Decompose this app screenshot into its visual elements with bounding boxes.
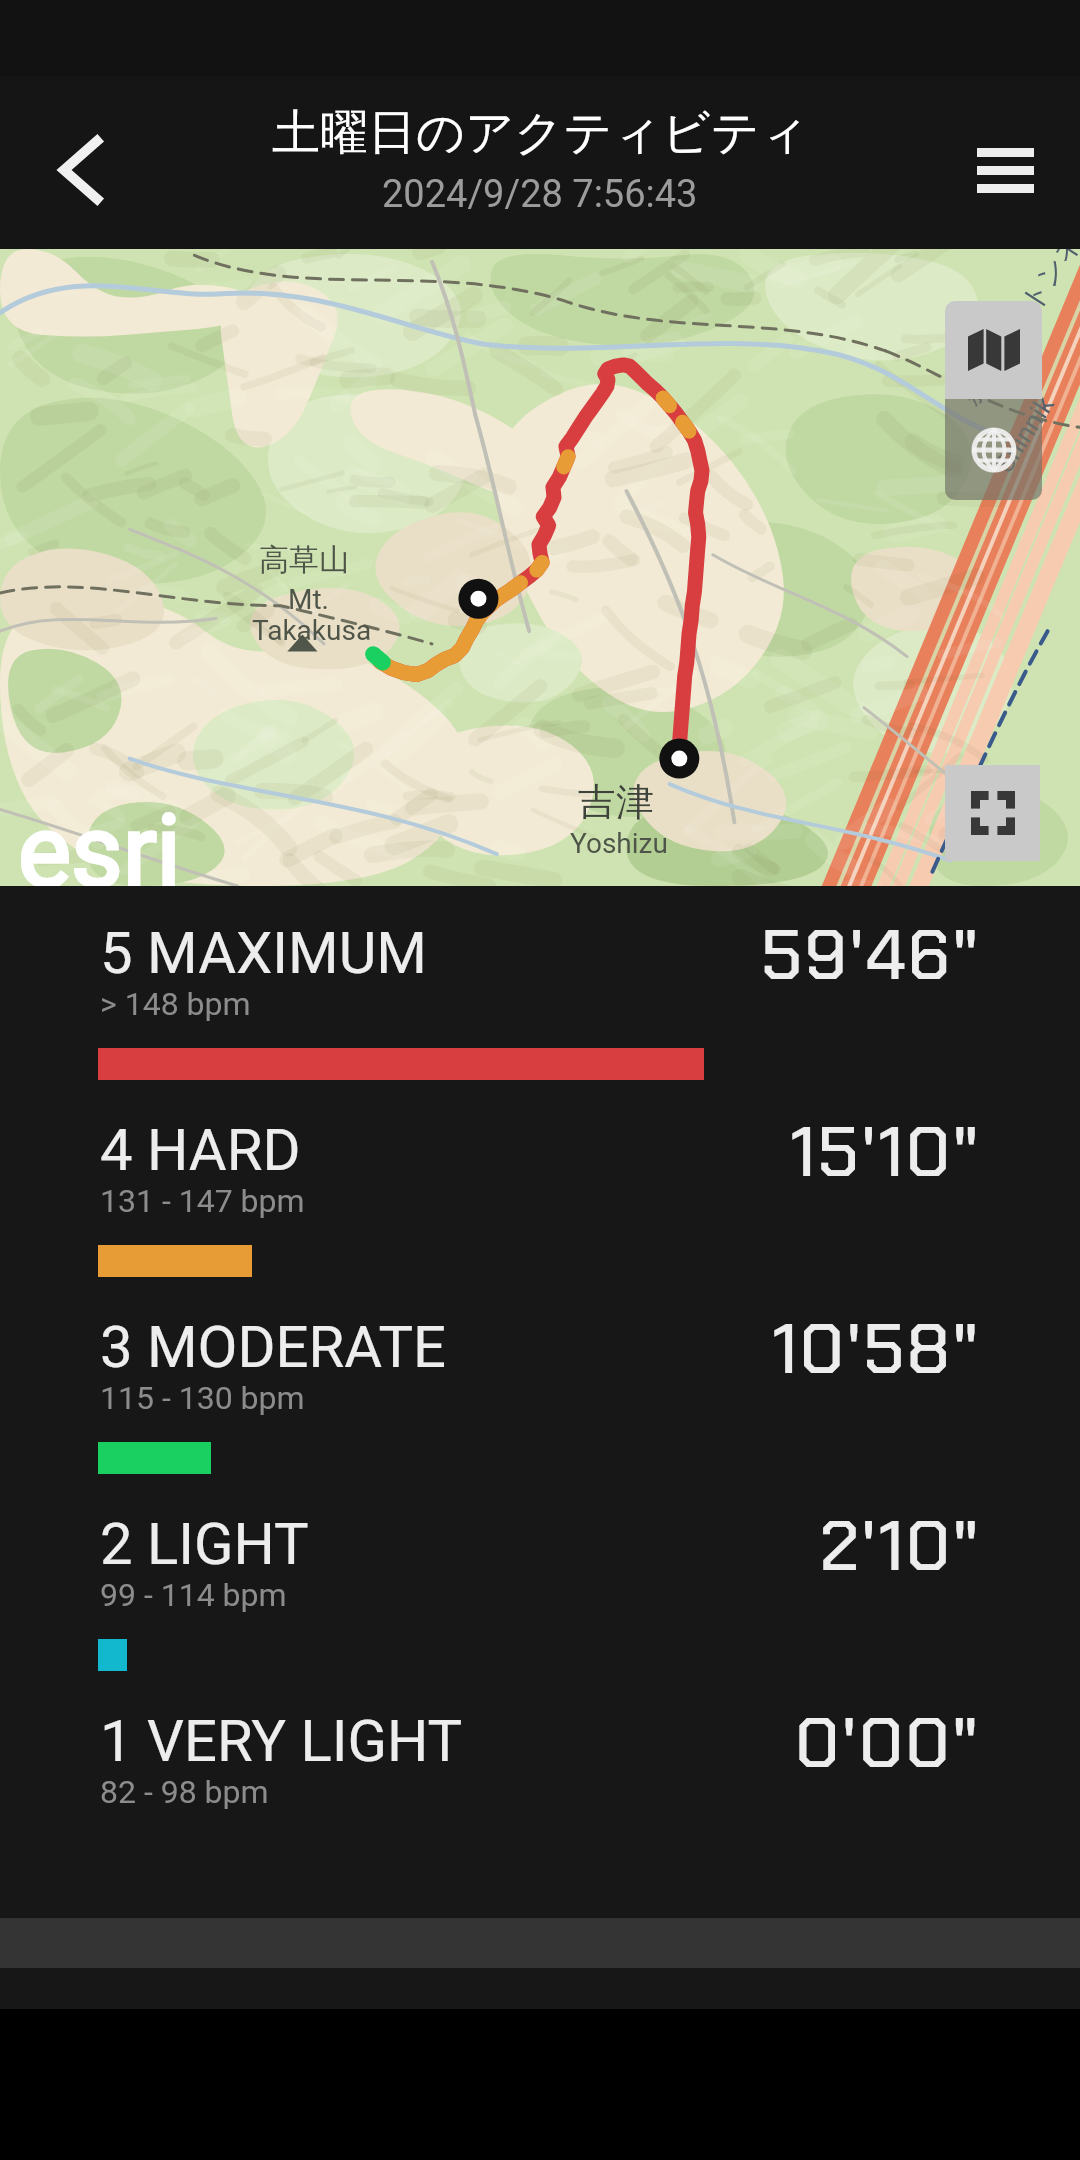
- staticText: 15'10": [790, 1107, 981, 1198]
- staticText: 4 HARD: [100, 1116, 301, 1184]
- staticText: 5 MAXIMUM: [100, 919, 427, 987]
- staticText: 2024/9/28 7:56:43: [382, 172, 698, 217]
- staticText: 131 - 147 bpm: [100, 1182, 305, 1220]
- button[interactable]: 5 MAXIMUM: [0, 919, 1080, 1116]
- staticText: 115 - 130 bpm: [100, 1379, 305, 1417]
- button[interactable]: Back: [0, 76, 160, 249]
- staticText: > 148 bpm: [100, 985, 251, 1023]
- staticText: 59'46": [761, 910, 981, 1001]
- staticText: 1 VERY LIGHT: [100, 1707, 463, 1775]
- button[interactable]: 4 HARD: [0, 1116, 1080, 1313]
- button[interactable]: Satellite: [945, 399, 1042, 500]
- button[interactable]: Menu: [920, 76, 1080, 249]
- button[interactable]: 2 LIGHT: [0, 1510, 1080, 1707]
- staticText: 10'58": [772, 1304, 981, 1395]
- staticText: 82 - 98 bpm: [100, 1773, 269, 1811]
- staticText: 吉津: [578, 778, 654, 826]
- staticText: 2'10": [820, 1501, 981, 1592]
- staticText: 99 - 114 bpm: [100, 1576, 287, 1614]
- staticText: 2 LIGHT: [100, 1510, 309, 1578]
- button[interactable]: Fullscreen: [945, 765, 1040, 861]
- staticText: 高草山: [259, 541, 349, 579]
- button[interactable]: Map type: [945, 301, 1042, 399]
- button[interactable]: 3 MODERATE: [0, 1313, 1080, 1510]
- button[interactable]: 1 VERY LIGHT: [0, 1707, 1080, 1904]
- staticText: 新日本坂トンネル: [952, 249, 1080, 411]
- staticText: Yoshizu: [570, 827, 668, 860]
- staticText: 土曜日のアクティビティ: [272, 103, 809, 163]
- staticText: Shinnik: [989, 390, 1060, 478]
- staticText: Takakusa: [252, 614, 372, 647]
- staticText: Mt.: [288, 583, 329, 616]
- staticText: 0'00": [795, 1698, 981, 1789]
- staticText: esri: [18, 793, 181, 886]
- staticText: 3 MODERATE: [100, 1313, 447, 1381]
